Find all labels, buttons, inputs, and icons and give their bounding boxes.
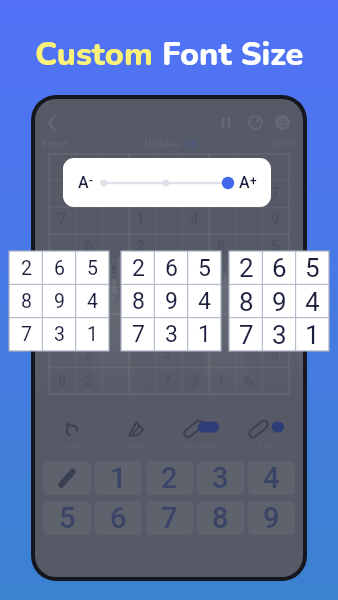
button[interactable]: 7 bbox=[146, 501, 193, 535]
button[interactable]: 8 bbox=[262, 340, 289, 367]
button[interactable] bbox=[49, 232, 75, 259]
button[interactable] bbox=[101, 180, 127, 206]
button[interactable]: 2 bbox=[262, 313, 289, 340]
button[interactable]: 3 bbox=[181, 367, 208, 394]
button[interactable] bbox=[154, 154, 181, 180]
button[interactable]: 3 bbox=[101, 286, 127, 313]
button[interactable] bbox=[75, 286, 101, 313]
button[interactable]: 5 bbox=[49, 286, 75, 313]
button[interactable]: 1 bbox=[127, 206, 154, 232]
button[interactable]: 2 bbox=[229, 251, 329, 351]
button[interactable]: 6 bbox=[181, 286, 208, 313]
button[interactable] bbox=[49, 154, 75, 180]
button[interactable]: 9 bbox=[127, 313, 154, 340]
button[interactable] bbox=[75, 154, 101, 180]
button[interactable] bbox=[262, 367, 289, 394]
button[interactable]: Erase bbox=[107, 418, 165, 454]
button[interactable]: Back bbox=[40, 111, 63, 134]
button[interactable] bbox=[127, 259, 154, 286]
button[interactable] bbox=[208, 154, 235, 180]
button[interactable] bbox=[127, 286, 154, 313]
button[interactable] bbox=[235, 313, 262, 340]
button[interactable]: 3 bbox=[197, 461, 244, 495]
button[interactable]: 6 bbox=[235, 367, 262, 394]
button[interactable] bbox=[49, 259, 75, 286]
button[interactable] bbox=[181, 340, 208, 367]
button[interactable]: 8 bbox=[197, 501, 244, 535]
button[interactable]: 9 bbox=[75, 180, 101, 206]
button[interactable] bbox=[154, 180, 181, 206]
button[interactable]: 5 bbox=[262, 232, 289, 259]
button[interactable]: 7 bbox=[127, 154, 154, 180]
button[interactable]: 7 bbox=[235, 286, 262, 313]
button[interactable]: 6 bbox=[75, 232, 101, 259]
button[interactable]: 5 bbox=[43, 501, 91, 535]
button[interactable] bbox=[75, 313, 101, 340]
button[interactable] bbox=[101, 340, 127, 367]
button[interactable]: 4 bbox=[101, 154, 127, 180]
button[interactable]: 1 bbox=[181, 313, 208, 340]
button[interactable]: 5 bbox=[154, 340, 181, 367]
button[interactable]: 9 bbox=[248, 501, 295, 535]
button[interactable]: 8 bbox=[101, 259, 127, 286]
button[interactable] bbox=[181, 259, 208, 286]
button[interactable] bbox=[49, 340, 75, 367]
button[interactable]: A bbox=[63, 158, 271, 207]
button[interactable] bbox=[127, 367, 154, 394]
button[interactable]: 6 bbox=[95, 501, 142, 535]
button[interactable] bbox=[154, 259, 181, 286]
button[interactable]: 1 bbox=[208, 367, 235, 394]
button[interactable] bbox=[235, 340, 262, 367]
button[interactable] bbox=[208, 313, 235, 340]
button[interactable] bbox=[262, 286, 289, 313]
button[interactable] bbox=[154, 206, 181, 232]
button[interactable] bbox=[154, 232, 181, 259]
button[interactable]: 7 bbox=[262, 180, 289, 206]
button[interactable] bbox=[235, 206, 262, 232]
button[interactable] bbox=[208, 340, 235, 367]
button[interactable] bbox=[101, 367, 127, 394]
button[interactable] bbox=[127, 180, 154, 206]
button[interactable] bbox=[235, 154, 262, 180]
button[interactable]: Pencil bbox=[43, 461, 91, 495]
button[interactable]: Draw bbox=[238, 418, 296, 454]
button[interactable]: 4 bbox=[248, 461, 295, 495]
button[interactable]: Fast Pencil bbox=[173, 418, 231, 454]
button[interactable]: 2 bbox=[9, 251, 109, 351]
button[interactable]: 2 bbox=[75, 367, 101, 394]
button[interactable]: 7 bbox=[49, 206, 75, 232]
button[interactable] bbox=[127, 340, 154, 367]
button[interactable]: 7 bbox=[154, 367, 181, 394]
button[interactable]: 4 bbox=[181, 206, 208, 232]
button[interactable] bbox=[49, 180, 75, 206]
button[interactable]: Undo bbox=[42, 418, 100, 454]
button[interactable]: 2 bbox=[146, 461, 193, 495]
button[interactable]: 2 bbox=[75, 340, 101, 367]
button[interactable] bbox=[208, 180, 235, 206]
button[interactable] bbox=[235, 232, 262, 259]
button[interactable] bbox=[262, 154, 289, 180]
button[interactable] bbox=[181, 154, 208, 180]
button[interactable] bbox=[101, 206, 127, 232]
button[interactable]: 2 bbox=[121, 251, 221, 351]
button[interactable] bbox=[75, 259, 101, 286]
button[interactable]: 8 bbox=[208, 232, 235, 259]
button[interactable] bbox=[235, 180, 262, 206]
button[interactable] bbox=[154, 313, 181, 340]
button[interactable]: 2 bbox=[208, 259, 235, 286]
button[interactable]: 9 bbox=[262, 206, 289, 232]
button[interactable] bbox=[181, 232, 208, 259]
button[interactable] bbox=[208, 206, 235, 232]
button[interactable]: 3 bbox=[181, 180, 208, 206]
button[interactable]: 2 bbox=[127, 232, 154, 259]
button[interactable] bbox=[262, 259, 289, 286]
button[interactable] bbox=[154, 286, 181, 313]
button[interactable] bbox=[208, 286, 235, 313]
button[interactable]: Pause bbox=[214, 111, 237, 134]
button[interactable] bbox=[101, 313, 127, 340]
button[interactable]: 1 bbox=[95, 461, 142, 495]
button[interactable] bbox=[101, 232, 127, 259]
button[interactable]: Theme bbox=[244, 111, 267, 134]
button[interactable] bbox=[235, 259, 262, 286]
button[interactable]: Settings bbox=[271, 111, 294, 134]
